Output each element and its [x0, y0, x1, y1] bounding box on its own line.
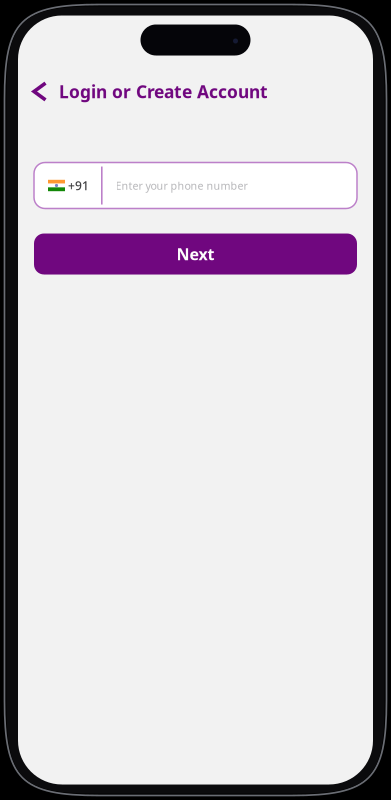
button[interactable]: Next — [34, 233, 357, 274]
button[interactable]: +91 — [34, 162, 101, 208]
staticText: +91 — [68, 177, 89, 193]
staticText: Enter your phone number — [116, 178, 248, 193]
button[interactable]: Enter your phone number — [103, 162, 357, 208]
button[interactable]: Back — [32, 78, 47, 104]
staticText: Login or Create Account — [59, 80, 268, 103]
staticText: Next — [176, 243, 214, 265]
